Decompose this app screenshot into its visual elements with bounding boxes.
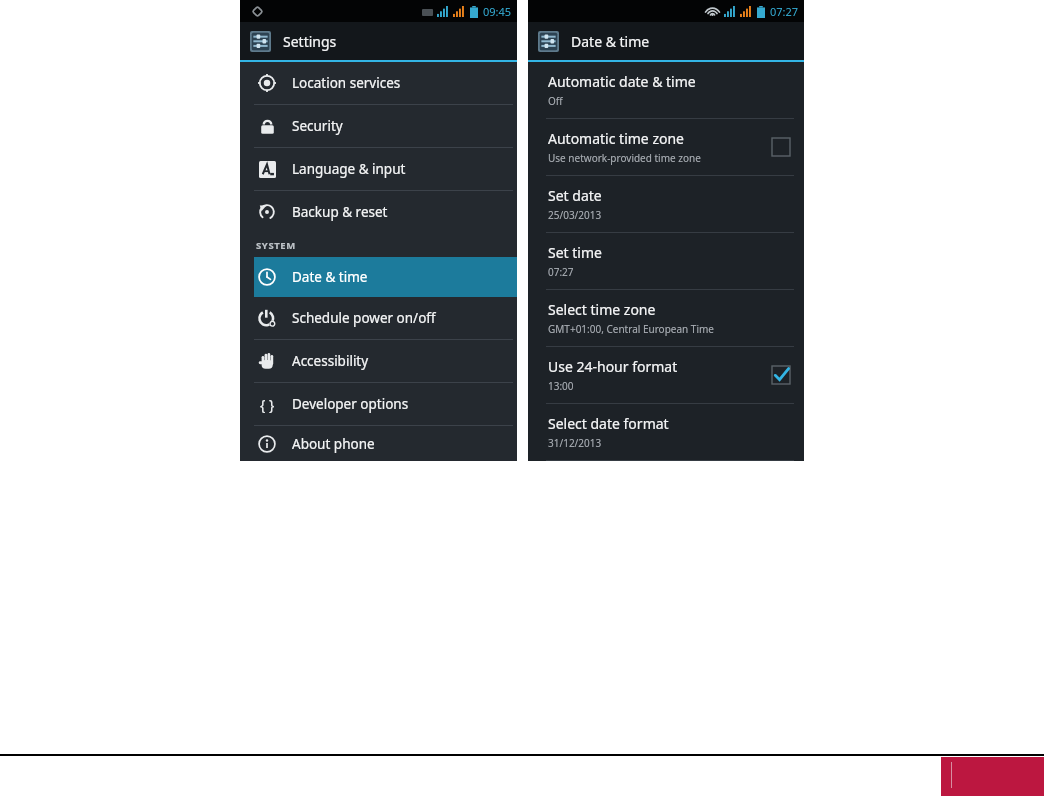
- button[interactable]: Set date: [528, 176, 804, 232]
- staticText: Backup & reset: [292, 203, 388, 221]
- button[interactable]: Automatic time zone: [528, 119, 804, 175]
- staticText: Developer options: [292, 395, 409, 413]
- button[interactable]: Use 24-hour format: [528, 347, 804, 403]
- button[interactable]: Language & input: [240, 148, 517, 190]
- staticText: Schedule power on/off: [292, 309, 436, 327]
- button[interactable]: Automatic date & time: [528, 62, 804, 118]
- staticText: 31/12/2013: [548, 436, 602, 450]
- staticText: 25/03/2013: [548, 208, 602, 222]
- staticText: About phone: [292, 435, 375, 453]
- staticText: Language & input: [292, 160, 406, 178]
- button[interactable]: Select date format: [528, 404, 804, 460]
- button[interactable]: Date & time: [254, 257, 517, 297]
- button[interactable]: Set time: [528, 233, 804, 289]
- button[interactable]: Accessibility: [240, 340, 517, 382]
- button[interactable]: About phone: [240, 426, 517, 461]
- staticText: Select date format: [548, 414, 669, 433]
- other: Toggle Automatic time zone: [772, 138, 790, 156]
- button[interactable]: Backup & reset: [240, 191, 517, 233]
- staticText: 07:27: [548, 265, 574, 279]
- other: Toggle Use 24-hour format: [772, 366, 790, 384]
- staticText: Select time zone: [548, 300, 656, 319]
- staticText: 07:27: [770, 4, 799, 19]
- staticText: Use 24-hour format: [548, 357, 678, 376]
- button[interactable]: Location services: [240, 62, 517, 104]
- staticText: 09:45: [483, 4, 512, 19]
- staticText: GMT+01:00, Central European Time: [548, 322, 714, 336]
- staticText: 13:00: [548, 379, 574, 393]
- staticText: Automatic time zone: [548, 129, 684, 148]
- button[interactable]: Date & time: [528, 22, 804, 60]
- staticText: Date & time: [571, 32, 650, 51]
- button[interactable]: { }: [240, 383, 517, 425]
- button[interactable]: Select time zone: [528, 290, 804, 346]
- staticText: Location services: [292, 74, 401, 92]
- staticText: Set time: [548, 243, 602, 262]
- button[interactable]: Settings: [240, 22, 517, 60]
- staticText: Settings: [283, 32, 337, 51]
- staticText: Automatic date & time: [548, 72, 696, 91]
- staticText: Set date: [548, 186, 602, 205]
- button[interactable]: Security: [240, 105, 517, 147]
- staticText: Use network-provided time zone: [548, 151, 701, 165]
- staticText: Accessibility: [292, 352, 369, 370]
- staticText: SYSTEM: [256, 239, 296, 252]
- staticText: Off: [548, 94, 563, 108]
- staticText: Date & time: [292, 268, 368, 286]
- button[interactable]: Schedule power on/off: [240, 297, 517, 339]
- staticText: { }: [260, 395, 275, 413]
- staticText: Security: [292, 117, 343, 135]
